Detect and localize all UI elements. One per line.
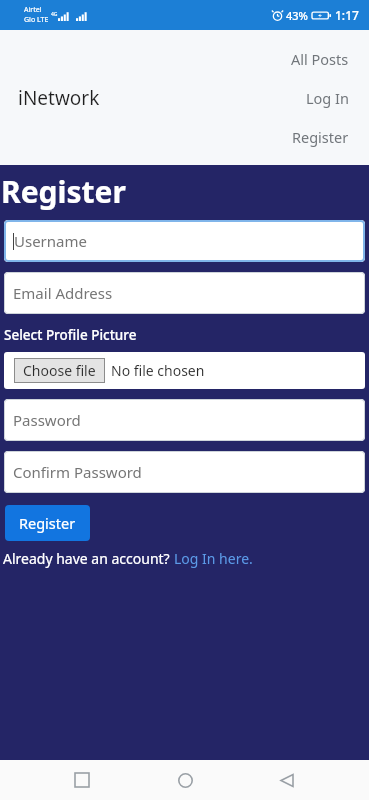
staticText: Password — [13, 410, 81, 430]
staticText: Already have an account? — [3, 549, 174, 568]
button[interactable]: iNetwork — [18, 85, 100, 111]
button[interactable]: Confirm Password — [4, 451, 365, 493]
staticText: Log In — [306, 88, 349, 108]
button[interactable]: Register — [290, 126, 351, 148]
button[interactable]: Log In — [304, 87, 351, 109]
button[interactable]: Choose file — [14, 358, 105, 383]
staticText: Register — [1, 171, 126, 212]
staticText: Log In here. — [174, 549, 253, 568]
staticText: Airtel — [24, 5, 42, 15]
button[interactable]: Back — [267, 760, 307, 800]
staticText: 4G — [51, 11, 58, 18]
button[interactable]: Home — [165, 760, 205, 800]
button[interactable]: Password — [4, 399, 365, 441]
staticText: Register — [19, 513, 76, 533]
button[interactable]: Recent apps — [62, 760, 102, 800]
button[interactable]: Username — [4, 220, 365, 262]
staticText: Confirm Password — [13, 462, 142, 482]
button[interactable]: Log In here. — [174, 549, 253, 568]
staticText: No file chosen — [111, 361, 205, 380]
staticText: 43% — [286, 8, 308, 23]
staticText: Select Profile Picture — [4, 326, 137, 344]
staticText: Email Address — [13, 283, 113, 303]
staticText: Username — [14, 231, 87, 251]
staticText: 1:17 — [335, 7, 359, 23]
staticText: Register — [292, 127, 349, 147]
staticText: All Posts — [291, 49, 349, 69]
staticText: Glo LTE — [24, 15, 49, 25]
button[interactable]: Choose file — [4, 352, 365, 389]
button[interactable]: All Posts — [289, 48, 351, 70]
button[interactable]: Register — [5, 505, 90, 541]
button[interactable]: Email Address — [4, 272, 365, 314]
staticText: Choose file — [23, 361, 96, 380]
